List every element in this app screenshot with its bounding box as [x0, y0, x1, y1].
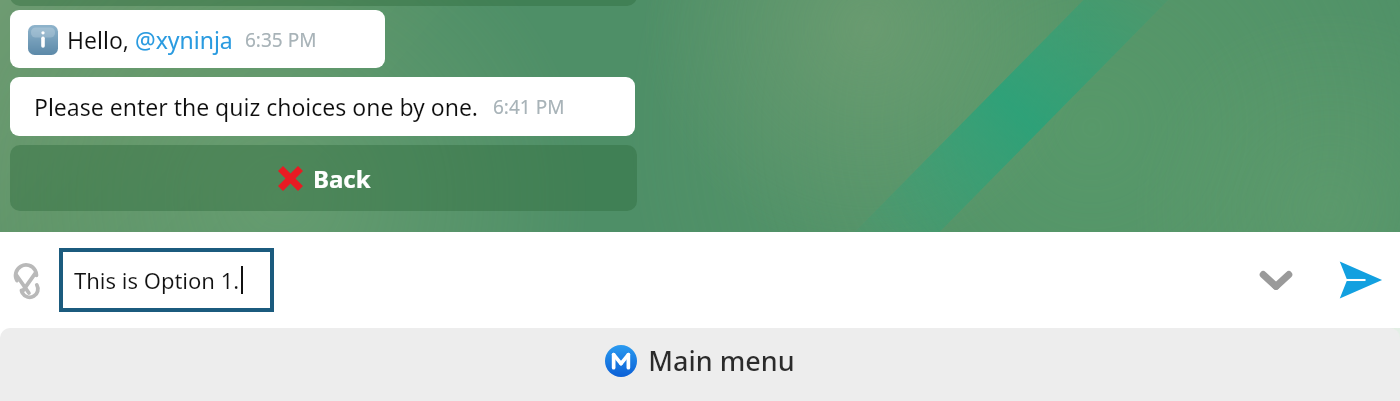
button[interactable]: Main menu — [0, 328, 1400, 401]
button[interactable]: Back — [10, 145, 637, 211]
staticText: This is Option 1. — [74, 265, 240, 295]
staticText: 6:41 PM — [493, 94, 565, 120]
staticText: Please enter the quiz choices one by one… — [34, 91, 479, 122]
button[interactable]: This is Option 1. — [59, 248, 274, 312]
button[interactable]: Attach file — [6, 256, 54, 304]
button[interactable]: Please enter the quiz choices one by one… — [10, 77, 635, 136]
button[interactable] — [10, 0, 637, 6]
staticText: Main menu — [648, 342, 795, 379]
staticText: Back — [313, 162, 371, 195]
button[interactable]: Send — [1330, 250, 1390, 310]
staticText: 6:35 PM — [245, 27, 317, 53]
staticText: @xyninja — [135, 24, 233, 55]
button[interactable]: Expand — [1248, 252, 1304, 308]
button[interactable]: Hello, — [10, 10, 385, 68]
staticText: Hello, — [67, 24, 135, 55]
